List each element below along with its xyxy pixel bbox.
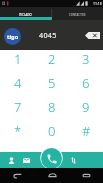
staticText: tigo [7, 33, 19, 41]
staticText: # [82, 122, 91, 140]
button[interactable]: Recents [69, 168, 103, 183]
staticText: CONTACTOS [69, 13, 86, 17]
button[interactable]: 7 [0, 95, 35, 119]
staticText: * [14, 122, 22, 140]
button[interactable]: Transfer [65, 152, 81, 168]
staticText: 7 [14, 98, 22, 116]
staticText: 9 [82, 98, 90, 116]
button[interactable]: Tigo operator [4, 28, 21, 45]
button[interactable]: 3 [69, 47, 103, 71]
staticText: 4045 [39, 30, 57, 40]
button[interactable]: 2 [35, 47, 69, 71]
staticText: 8 [48, 98, 56, 116]
button[interactable]: Home [35, 168, 69, 183]
button[interactable]: Back [0, 168, 35, 183]
button[interactable]: CONTACTOS [51, 7, 103, 20]
button[interactable]: Contacts [3, 152, 19, 168]
staticText: TECLADO [19, 13, 32, 17]
button[interactable]: Backspace [84, 29, 101, 42]
button[interactable]: TECLADO [0, 7, 51, 20]
button[interactable]: # [69, 119, 103, 143]
staticText: 6 [82, 74, 90, 92]
button[interactable]: 4 [0, 71, 35, 95]
button[interactable]: 0 [35, 119, 69, 143]
button[interactable]: Messages [18, 152, 34, 168]
staticText: 1 [14, 50, 22, 68]
button[interactable]: * [0, 119, 35, 143]
button[interactable]: Call [41, 148, 62, 169]
staticText: 3 [82, 50, 90, 68]
staticText: 2 [48, 50, 56, 68]
staticText: 4 [14, 74, 22, 92]
staticText: 11:18 [93, 1, 102, 6]
staticText: 5 [48, 74, 56, 92]
staticText: 0 [48, 122, 56, 140]
button[interactable]: 6 [69, 71, 103, 95]
button[interactable]: 8 [35, 95, 69, 119]
button[interactable]: 9 [69, 95, 103, 119]
button[interactable]: 5 [35, 71, 69, 95]
button[interactable]: 1 [0, 47, 35, 71]
